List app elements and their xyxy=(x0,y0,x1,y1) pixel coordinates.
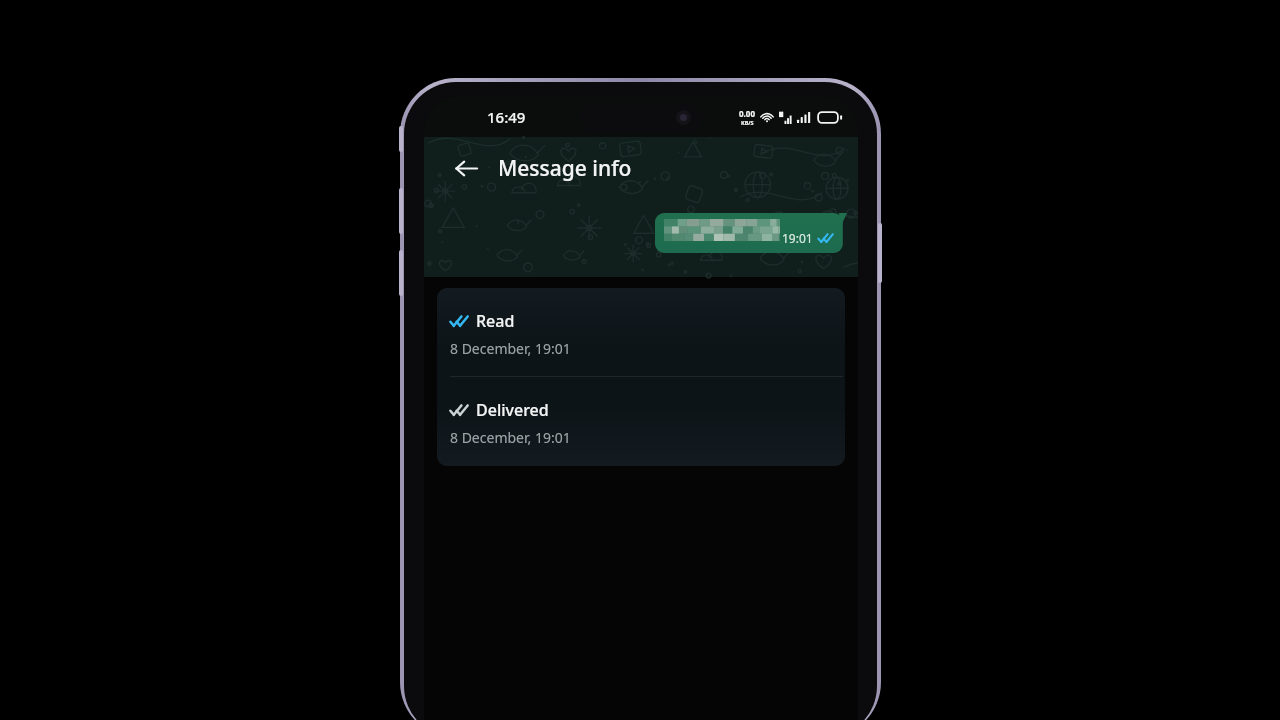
staticText: Delivered xyxy=(476,399,549,421)
button[interactable]: Delivered xyxy=(437,377,845,465)
staticText: 8 December, 19:01 xyxy=(450,428,571,447)
button[interactable]: Back xyxy=(446,148,486,188)
staticText: 8 December, 19:01 xyxy=(450,339,571,358)
staticText: 0.00 xyxy=(739,108,755,119)
staticText: 19:01 xyxy=(782,230,813,246)
button[interactable]: Read xyxy=(437,288,845,376)
staticText: KB/S xyxy=(741,119,754,126)
staticText: 16:49 xyxy=(487,107,526,127)
staticText: Read xyxy=(476,310,515,332)
staticText: Message info xyxy=(498,154,632,183)
